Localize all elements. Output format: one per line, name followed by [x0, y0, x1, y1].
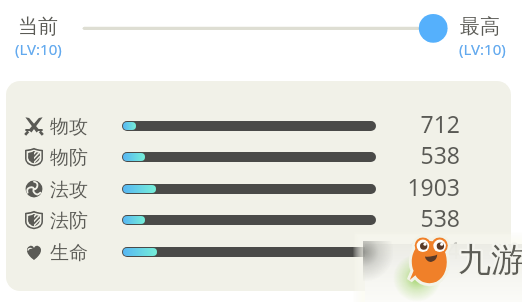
staticText: 538: [391, 202, 460, 232]
button[interactable]: 物攻: [6, 111, 511, 141]
staticText: 1024: [391, 234, 460, 264]
staticText: 九游: [458, 241, 522, 283]
staticText: 1903: [391, 171, 460, 201]
staticText: 九游: [459, 238, 522, 280]
staticText: 九游: [456, 239, 522, 281]
button[interactable]: 物防: [6, 142, 511, 172]
staticText: (LV:10): [15, 39, 62, 59]
staticText: 九游: [459, 239, 522, 281]
staticText: 九游: [458, 237, 522, 279]
staticText: 538: [391, 139, 460, 169]
staticText: 九游: [458, 239, 522, 281]
staticText: 九游: [459, 241, 522, 283]
staticText: 九游: [458, 238, 522, 280]
staticText: 九游: [456, 238, 522, 280]
button[interactable]: 法防: [6, 205, 511, 235]
staticText: 物防: [50, 146, 88, 170]
staticText: 九游: [460, 239, 522, 281]
button[interactable]: Level slider: [80, 10, 455, 46]
staticText: 生命: [50, 241, 88, 265]
button[interactable]: 生命: [6, 237, 511, 267]
staticText: 当前: [18, 14, 58, 39]
staticText: 九游: [456, 240, 522, 282]
staticText: 九游: [460, 240, 522, 282]
staticText: (LV:10): [459, 39, 506, 59]
staticText: 物攻: [50, 115, 88, 139]
staticText: 法防: [50, 209, 88, 233]
staticText: 九游: [460, 238, 522, 280]
staticText: 九游: [457, 240, 522, 282]
staticText: 九游: [457, 239, 522, 281]
button[interactable]: 法攻: [6, 174, 511, 204]
staticText: 九游: [459, 240, 522, 282]
staticText: 最高: [460, 14, 500, 39]
staticText: 九游: [457, 237, 522, 279]
staticText: 九游: [457, 238, 522, 280]
staticText: 712: [391, 108, 460, 138]
staticText: 九游: [458, 240, 522, 282]
staticText: 法攻: [50, 178, 88, 202]
staticText: 九游: [457, 241, 522, 283]
staticText: 九游: [459, 237, 522, 279]
